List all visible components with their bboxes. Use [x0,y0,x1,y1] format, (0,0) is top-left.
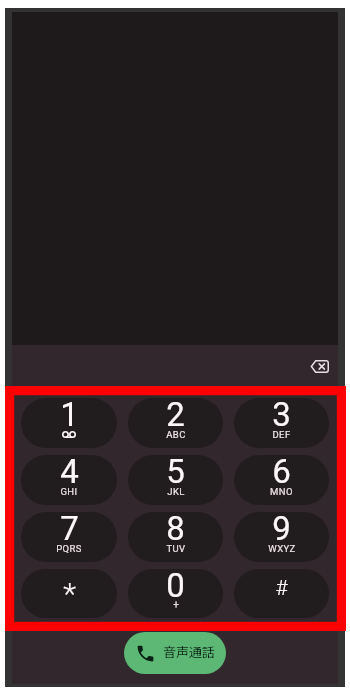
staticText: 8 [166,512,185,548]
button[interactable]: # [234,569,329,618]
button[interactable]: 9 [234,512,329,562]
button[interactable]: 2 [128,398,223,448]
staticText: PQRS [56,543,82,554]
staticText: JKL [167,486,185,497]
button[interactable]: 3 [234,398,329,448]
staticText: MNO [270,486,293,497]
button[interactable]: 音声通話 [124,632,226,674]
staticText: + [173,599,179,611]
staticText: 4 [60,455,79,491]
staticText: GHI [60,486,78,497]
staticText: 6 [272,455,291,491]
button[interactable]: 7 [21,512,117,562]
button[interactable]: 5 [128,455,223,505]
staticText: TUV [166,543,186,554]
staticText: 3 [272,398,291,434]
staticText: WXYZ [268,543,296,554]
button[interactable]: 8 [128,512,223,562]
staticText: DEF [272,429,291,440]
staticText: 音声通話 [163,642,216,661]
button[interactable]: 1 [21,398,117,448]
button[interactable]: * [21,569,117,618]
staticText: 9 [272,512,291,548]
staticText: ABC [166,429,186,440]
button[interactable]: 0 [128,569,223,618]
staticText: 0 [166,569,185,605]
staticText: * [63,576,76,611]
staticText: 7 [60,512,79,548]
staticText: 1 [60,398,79,434]
button[interactable]: Backspace [303,350,335,382]
staticText: 5 [166,455,185,491]
button[interactable]: 4 [21,455,117,505]
staticText: 2 [166,398,185,434]
staticText: # [275,576,288,601]
button[interactable]: 6 [234,455,329,505]
